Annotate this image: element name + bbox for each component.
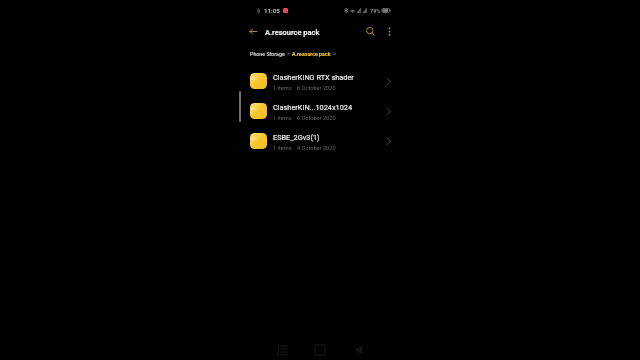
button[interactable]: Back (243, 21, 263, 41)
staticText: ClasherKIN...1024x1024 (273, 103, 353, 112)
button[interactable]: Recent apps (272, 339, 294, 360)
staticText: 1 items (273, 85, 292, 92)
staticText: 4 October 2020 (297, 145, 336, 152)
button[interactable]: A.resource pack (292, 51, 331, 57)
staticText: ClasherKING RTX shader (273, 73, 354, 82)
staticText: A.resource pack (265, 28, 320, 37)
staticText: 79% (370, 8, 381, 14)
staticText: 1 items (273, 115, 292, 122)
staticText: 1 items (273, 145, 292, 152)
button[interactable]: ClasherKIN...1024x1024 (239, 96, 401, 126)
button[interactable]: ESBE_2Gv3(1) (239, 126, 401, 156)
button[interactable]: Phone Storage (250, 51, 285, 57)
button[interactable]: Search (360, 21, 380, 41)
staticText: 6 October 2020 (297, 115, 336, 122)
staticText: 6 October 2020 (297, 85, 336, 92)
staticText: 11:05 (264, 7, 280, 14)
button[interactable]: ClasherKING RTX shader (239, 66, 401, 96)
button[interactable]: Home (309, 339, 331, 360)
button[interactable]: Back (347, 339, 369, 360)
staticText: ESBE_2Gv3(1) (273, 133, 320, 142)
button[interactable]: More options (379, 21, 399, 41)
